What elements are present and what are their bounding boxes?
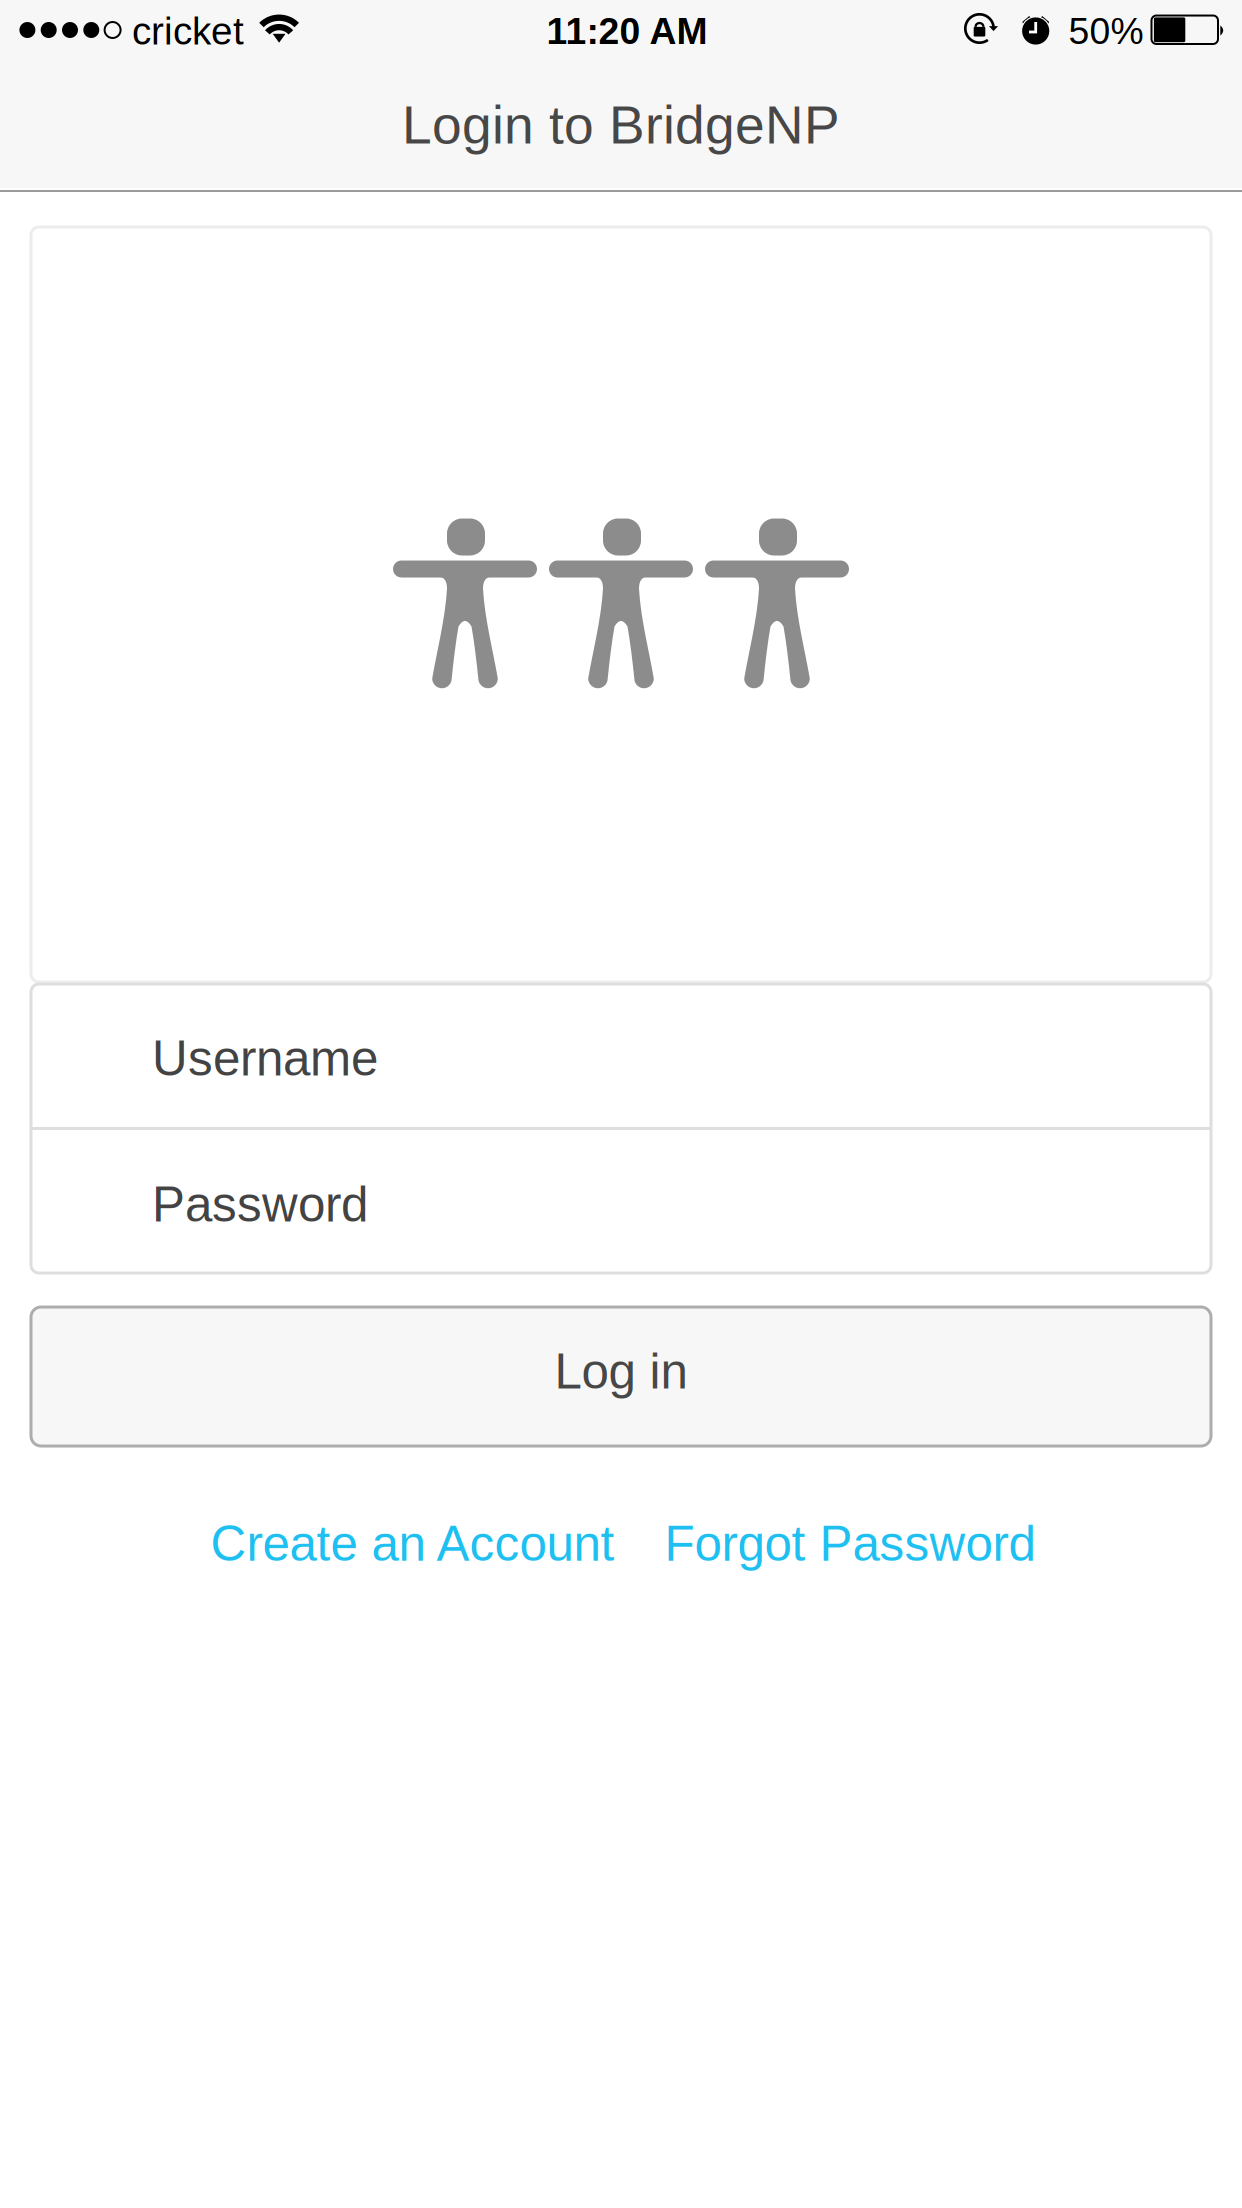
button[interactable]: Create an Account xyxy=(210,1516,614,1571)
button[interactable]: Log in xyxy=(31,1307,1211,1446)
staticText: cricket xyxy=(132,9,244,53)
staticText: Password xyxy=(152,1177,368,1232)
staticText: Create an Account xyxy=(210,1516,614,1571)
staticText: Log in xyxy=(554,1344,687,1399)
staticText: Forgot Password xyxy=(664,1516,1035,1571)
button[interactable]: Password xyxy=(31,1130,1211,1273)
staticText: 50% xyxy=(1068,10,1143,52)
staticText: Username xyxy=(152,1031,378,1086)
button[interactable]: Forgot Password xyxy=(664,1516,1035,1571)
staticText: 11:20 AM xyxy=(546,10,707,52)
staticText: Login to BridgeNP xyxy=(402,95,840,155)
button[interactable]: Username xyxy=(31,984,1211,1127)
